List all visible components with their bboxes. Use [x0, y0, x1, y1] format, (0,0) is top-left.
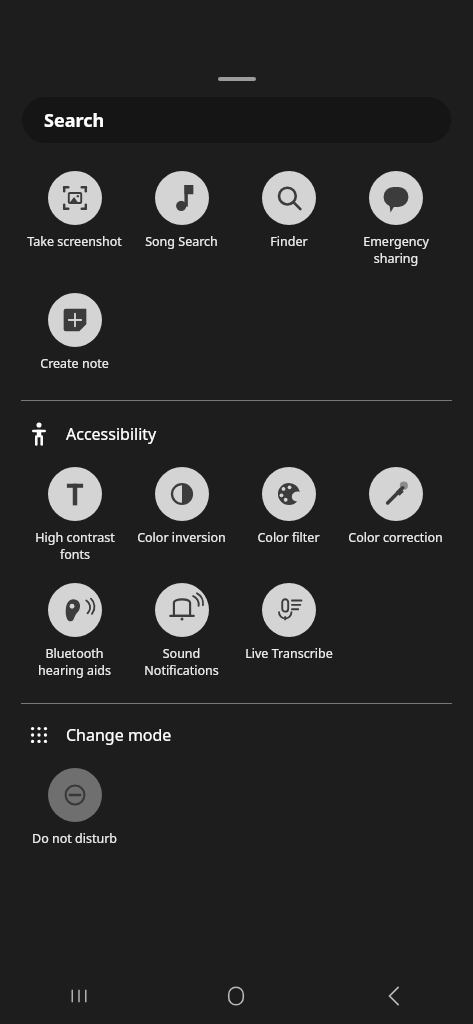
staticText: Live Transcribe — [245, 645, 333, 662]
staticText: Search — [44, 108, 105, 133]
staticText: Color inversion — [137, 529, 226, 546]
button[interactable]: Color inversion — [128, 467, 235, 546]
staticText: Color correction — [348, 529, 443, 546]
button[interactable]: Sound Notifications — [128, 583, 235, 679]
staticText: High contrast fonts — [35, 529, 115, 563]
button[interactable]: Change mode — [0, 720, 473, 750]
button[interactable]: Color filter — [235, 467, 342, 546]
staticText: Emergency sharing — [363, 233, 429, 267]
button[interactable]: High contrast fonts — [21, 467, 128, 563]
button[interactable]: Create note — [21, 293, 128, 372]
button[interactable]: Home — [157, 968, 315, 1024]
staticText: Take screenshot — [27, 233, 122, 250]
staticText: Do not disturb — [32, 830, 117, 847]
button[interactable]: Recents — [0, 968, 157, 1024]
staticText: Finder — [270, 233, 308, 250]
staticText: Bluetooth hearing aids — [38, 645, 111, 679]
button[interactable]: Search — [22, 97, 451, 143]
button[interactable]: Do not disturb — [21, 768, 128, 847]
button[interactable]: Emergency sharing — [342, 171, 449, 267]
staticText: Color filter — [257, 529, 320, 546]
staticText: Song Search — [145, 233, 218, 250]
staticText: Change mode — [66, 724, 172, 746]
button[interactable]: Song Search — [128, 171, 235, 250]
button[interactable]: Color correction — [342, 467, 449, 546]
button[interactable]: Take screenshot — [21, 171, 128, 250]
button[interactable]: Accessibility — [0, 419, 473, 449]
staticText: Accessibility — [66, 423, 157, 445]
button[interactable]: Back — [315, 968, 473, 1024]
staticText: Create note — [40, 355, 109, 372]
button[interactable]: Bluetooth hearing aids — [21, 583, 128, 679]
button[interactable]: Finder — [235, 171, 342, 250]
staticText: Sound Notifications — [144, 645, 219, 679]
button[interactable]: Live Transcribe — [235, 583, 342, 662]
